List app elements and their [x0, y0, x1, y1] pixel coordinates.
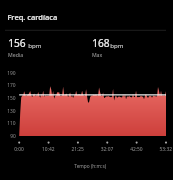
button[interactable]: [0, 0, 173, 180]
